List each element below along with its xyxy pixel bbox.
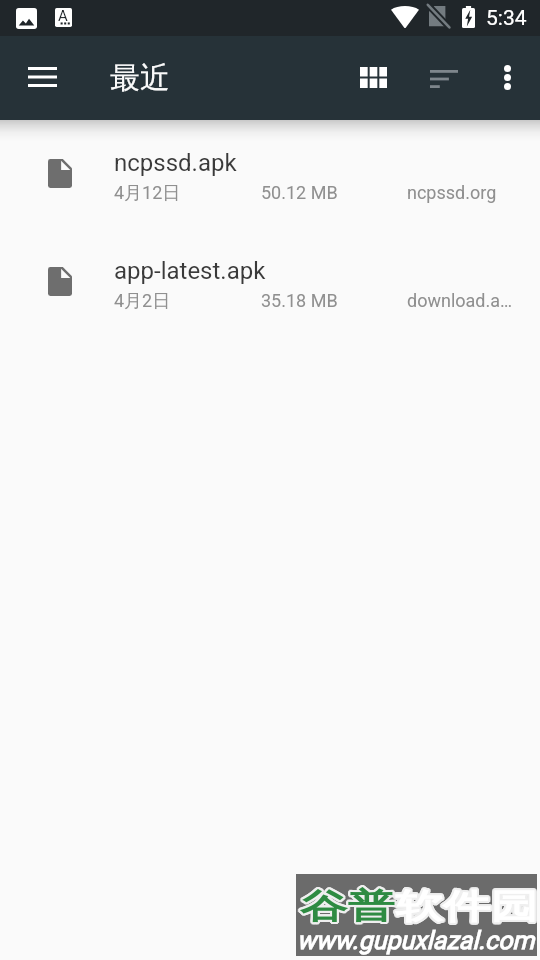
staticText: 50.12 MB — [261, 182, 338, 203]
staticText: 谷普软件园 — [300, 886, 538, 929]
staticText: ncpssd.apk — [114, 149, 237, 177]
staticText: app-latest.apk — [114, 257, 266, 285]
button[interactable]: More options — [479, 49, 535, 105]
staticText: 软件园 — [395, 885, 538, 928]
staticText: 谷普软件园 — [299, 887, 537, 930]
staticText: 谷普软件园 — [300, 883, 538, 926]
staticText: 4月2日 — [114, 290, 171, 313]
staticText: 35.18 MB — [261, 290, 338, 311]
button[interactable]: ncpssd.apk — [0, 133, 540, 241]
staticText: 谷普软件园 — [298, 886, 536, 929]
staticText: 谷普软件园 — [298, 885, 536, 928]
staticText: 谷普软件园 — [299, 883, 537, 926]
staticText: 最近 — [110, 59, 170, 97]
staticText: 谷普软件园 — [302, 886, 540, 929]
staticText: 谷普软件园 — [301, 884, 539, 927]
staticText: 谷普软件园 — [301, 885, 539, 928]
staticText: 谷普软件园 — [301, 886, 539, 929]
staticText: 5:34 — [486, 6, 527, 31]
staticText: ncpssd.org — [407, 182, 531, 203]
staticText: download.a… — [407, 290, 531, 311]
button[interactable]: Sort — [416, 51, 472, 107]
staticText: 谷普软件园 — [300, 887, 538, 930]
staticText: 4月12日 — [114, 182, 181, 205]
staticText: www.gupuxlazal.com — [297, 926, 535, 955]
staticText: 谷普软件园 — [300, 884, 538, 927]
staticText: 谷普软件园 — [301, 887, 539, 930]
staticText: 谷普软件园 — [302, 884, 540, 927]
staticText: 谷普软件园 — [302, 885, 540, 928]
staticText: 谷普软件园 — [299, 884, 537, 927]
staticText: 谷普 — [300, 885, 395, 928]
button[interactable]: Show roots — [14, 49, 70, 105]
staticText: A — [58, 7, 68, 25]
staticText: 谷普软件园 — [298, 884, 536, 927]
staticText: 谷普软件园 — [299, 886, 537, 929]
staticText: 谷普软件园 — [299, 885, 537, 928]
button[interactable]: Grid view — [345, 49, 401, 105]
button[interactable]: app-latest.apk — [0, 241, 540, 349]
staticText: 谷普软件园 — [301, 883, 539, 926]
